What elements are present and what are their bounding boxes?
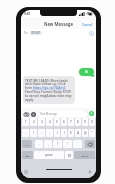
button[interactable]: ! <box>63 140 72 148</box>
staticText: ) <box>64 131 65 135</box>
staticText: ? <box>57 142 59 146</box>
button[interactable]: 1 <box>22 118 29 126</box>
button[interactable]: ' <box>73 140 82 148</box>
staticText: @ <box>84 131 87 135</box>
button[interactable]: ABC <box>22 151 33 159</box>
button[interactable]: 8 <box>75 118 81 126</box>
staticText: TEXT ME LEADS: More leads with faster fo… <box>25 78 73 102</box>
button[interactable]: @ <box>82 129 88 137</box>
button[interactable]: & <box>75 129 81 137</box>
staticText: - <box>25 131 26 135</box>
button[interactable]: ) <box>61 129 67 137</box>
button[interactable]: return <box>74 151 95 159</box>
button[interactable]: - <box>22 129 29 137</box>
staticText: ; <box>49 131 50 135</box>
button[interactable]: , <box>44 140 52 148</box>
button[interactable]: 3 <box>38 118 45 126</box>
button[interactable]: space <box>34 151 64 159</box>
staticText: ( <box>57 131 58 135</box>
button[interactable]: Backspace <box>85 140 95 148</box>
button[interactable]: / <box>30 129 37 137</box>
staticText: space <box>45 153 53 157</box>
button[interactable]: Add contact <box>89 31 94 36</box>
staticText: 5 <box>56 120 58 124</box>
staticText: Hi <box>85 70 88 74</box>
button[interactable]: 4 <box>46 118 53 126</box>
staticText: Text Message <box>40 112 58 116</box>
staticText: #+= <box>25 143 30 146</box>
staticText: 7 <box>70 120 72 124</box>
staticText: 9 <box>84 120 86 124</box>
button[interactable]: #+= <box>22 140 32 148</box>
button[interactable]: 2 <box>30 118 37 126</box>
button[interactable]: ( <box>54 129 60 137</box>
button[interactable]: : <box>38 129 45 137</box>
button[interactable]: Cancel <box>82 22 96 26</box>
button[interactable]: " <box>89 129 95 137</box>
button[interactable]: Switch keyboard <box>24 170 28 174</box>
button[interactable]: 5 <box>54 118 60 126</box>
button[interactable]: 7 <box>68 118 74 126</box>
staticText: . <box>39 142 40 146</box>
staticText: To: <box>24 31 29 35</box>
staticText: : <box>41 131 42 135</box>
button[interactable]: ? <box>53 140 62 148</box>
staticText: 2 <box>33 120 35 124</box>
button[interactable]: 6 <box>61 118 67 126</box>
staticText: 3 <box>41 120 43 124</box>
button[interactable]: Dictate <box>88 170 92 174</box>
button[interactable]: Send <box>89 111 94 116</box>
button[interactable]: ; <box>46 129 53 137</box>
staticText: / <box>33 131 35 135</box>
staticText: New Message <box>44 21 73 27</box>
button[interactable]: . <box>35 140 43 148</box>
button[interactable]: Camera <box>23 111 29 117</box>
staticText: 8 <box>77 120 79 124</box>
staticText: 9:41 <box>24 12 31 16</box>
staticText: " <box>91 131 93 135</box>
staticText: ! <box>67 142 68 146</box>
button[interactable]: Apps <box>30 111 36 117</box>
staticText: return <box>81 154 89 157</box>
button[interactable]: 9 <box>82 118 88 126</box>
staticText: 1 <box>25 120 27 124</box>
staticText: 4 <box>49 120 51 124</box>
staticText: ABC <box>25 154 30 157</box>
staticText: , <box>48 142 49 146</box>
button[interactable]: 0 <box>89 118 95 126</box>
button[interactable]: Text Message <box>38 111 88 117</box>
button[interactable]: Emoji <box>65 151 73 159</box>
staticText: 6 <box>63 120 65 124</box>
staticText: 0 <box>91 120 93 124</box>
staticText: $ <box>70 131 72 135</box>
staticText: ' <box>77 142 78 146</box>
button[interactable]: $ <box>68 129 74 137</box>
staticText: & <box>77 131 80 135</box>
staticText: (555)01 <box>31 31 41 35</box>
